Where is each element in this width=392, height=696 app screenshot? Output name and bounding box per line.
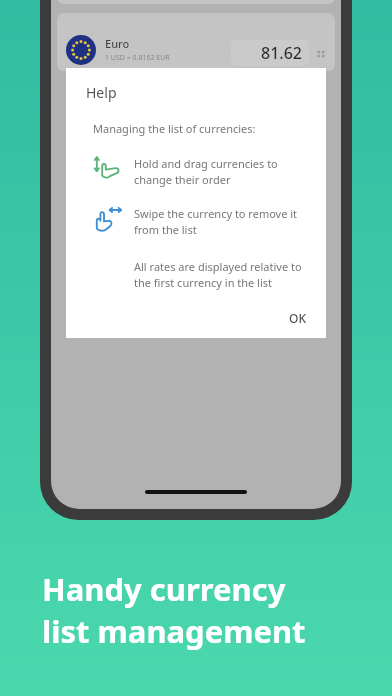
staticText: Euro bbox=[105, 36, 130, 51]
staticText: 81.62 bbox=[261, 42, 302, 64]
staticText: Handy currency bbox=[42, 568, 286, 610]
button[interactable]: Euro bbox=[57, 13, 335, 71]
staticText: Hold and drag currencies to change their… bbox=[134, 156, 278, 187]
staticText: Help bbox=[86, 83, 117, 102]
staticText: Managing the list of currencies: bbox=[93, 121, 256, 136]
staticText: Swipe the currency to remove it from the… bbox=[134, 206, 298, 237]
staticText: list management bbox=[42, 610, 306, 652]
staticText: OK bbox=[289, 310, 306, 326]
staticText: 1 USD = 0.8162 EUR bbox=[105, 53, 170, 63]
button[interactable]: OK bbox=[279, 304, 316, 332]
staticText: All rates are displayed relative to the … bbox=[134, 259, 302, 290]
